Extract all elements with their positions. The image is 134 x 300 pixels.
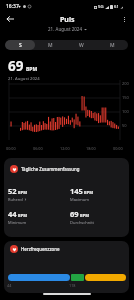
- staticText: M: [110, 42, 115, 49]
- staticText: BPM: [18, 213, 27, 218]
- staticText: 50: [122, 123, 127, 128]
- button[interactable]: M: [97, 40, 128, 50]
- staticText: M: [48, 42, 53, 49]
- staticText: Tägliche Zusammenfassung: [21, 166, 80, 172]
- staticText: 61: [114, 4, 119, 10]
- staticText: BPM: [26, 66, 38, 73]
- staticText: 118: [69, 283, 76, 288]
- staticText: Ruhend: [8, 197, 23, 202]
- button[interactable]: 44: [4, 209, 62, 225]
- staticText: 00:00: [6, 146, 16, 151]
- button[interactable]: Tägliche Zusammenfassung: [4, 158, 129, 237]
- staticText: W: [79, 42, 84, 49]
- staticText: 44: [7, 283, 12, 288]
- staticText: Maximum: [70, 197, 89, 202]
- staticText: 52: [8, 186, 17, 196]
- button[interactable]: 52: [4, 186, 62, 202]
- staticText: 69: [8, 57, 24, 75]
- staticText: 21. August 2024: [8, 76, 40, 82]
- staticText: 16:37: [6, 3, 19, 10]
- staticText: Puls: [60, 15, 75, 25]
- staticText: 145: [70, 186, 83, 196]
- button[interactable]: M: [35, 40, 66, 50]
- staticText: S: [19, 42, 22, 49]
- staticText: 150: [122, 95, 129, 100]
- staticText: BPM: [84, 190, 93, 195]
- staticText: 100: [122, 109, 129, 114]
- button[interactable]: 145: [66, 186, 124, 202]
- button[interactable]: More options: [115, 10, 133, 28]
- staticText: 12:00: [60, 146, 70, 151]
- staticText: BPM: [18, 190, 27, 195]
- staticText: 21. August 2024: [48, 26, 82, 32]
- button[interactable]: Herzfrequenzzone: [4, 241, 129, 293]
- staticText: 18:00: [86, 146, 96, 151]
- button[interactable]: Back: [1, 10, 19, 28]
- staticText: BPM: [80, 213, 89, 218]
- staticText: 00:00: [113, 146, 123, 151]
- staticText: 69: [70, 209, 79, 219]
- staticText: Herzfrequenzzone: [21, 246, 60, 252]
- staticText: 200: [122, 81, 129, 86]
- staticText: 5G: [98, 4, 104, 10]
- button[interactable]: 69: [66, 209, 124, 225]
- staticText: Durchschnitt: [70, 220, 95, 225]
- staticText: 06:00: [33, 146, 43, 151]
- staticText: 44: [8, 209, 17, 219]
- staticText: Minimum: [8, 220, 27, 225]
- button[interactable]: S: [5, 40, 35, 50]
- button[interactable]: W: [66, 40, 97, 50]
